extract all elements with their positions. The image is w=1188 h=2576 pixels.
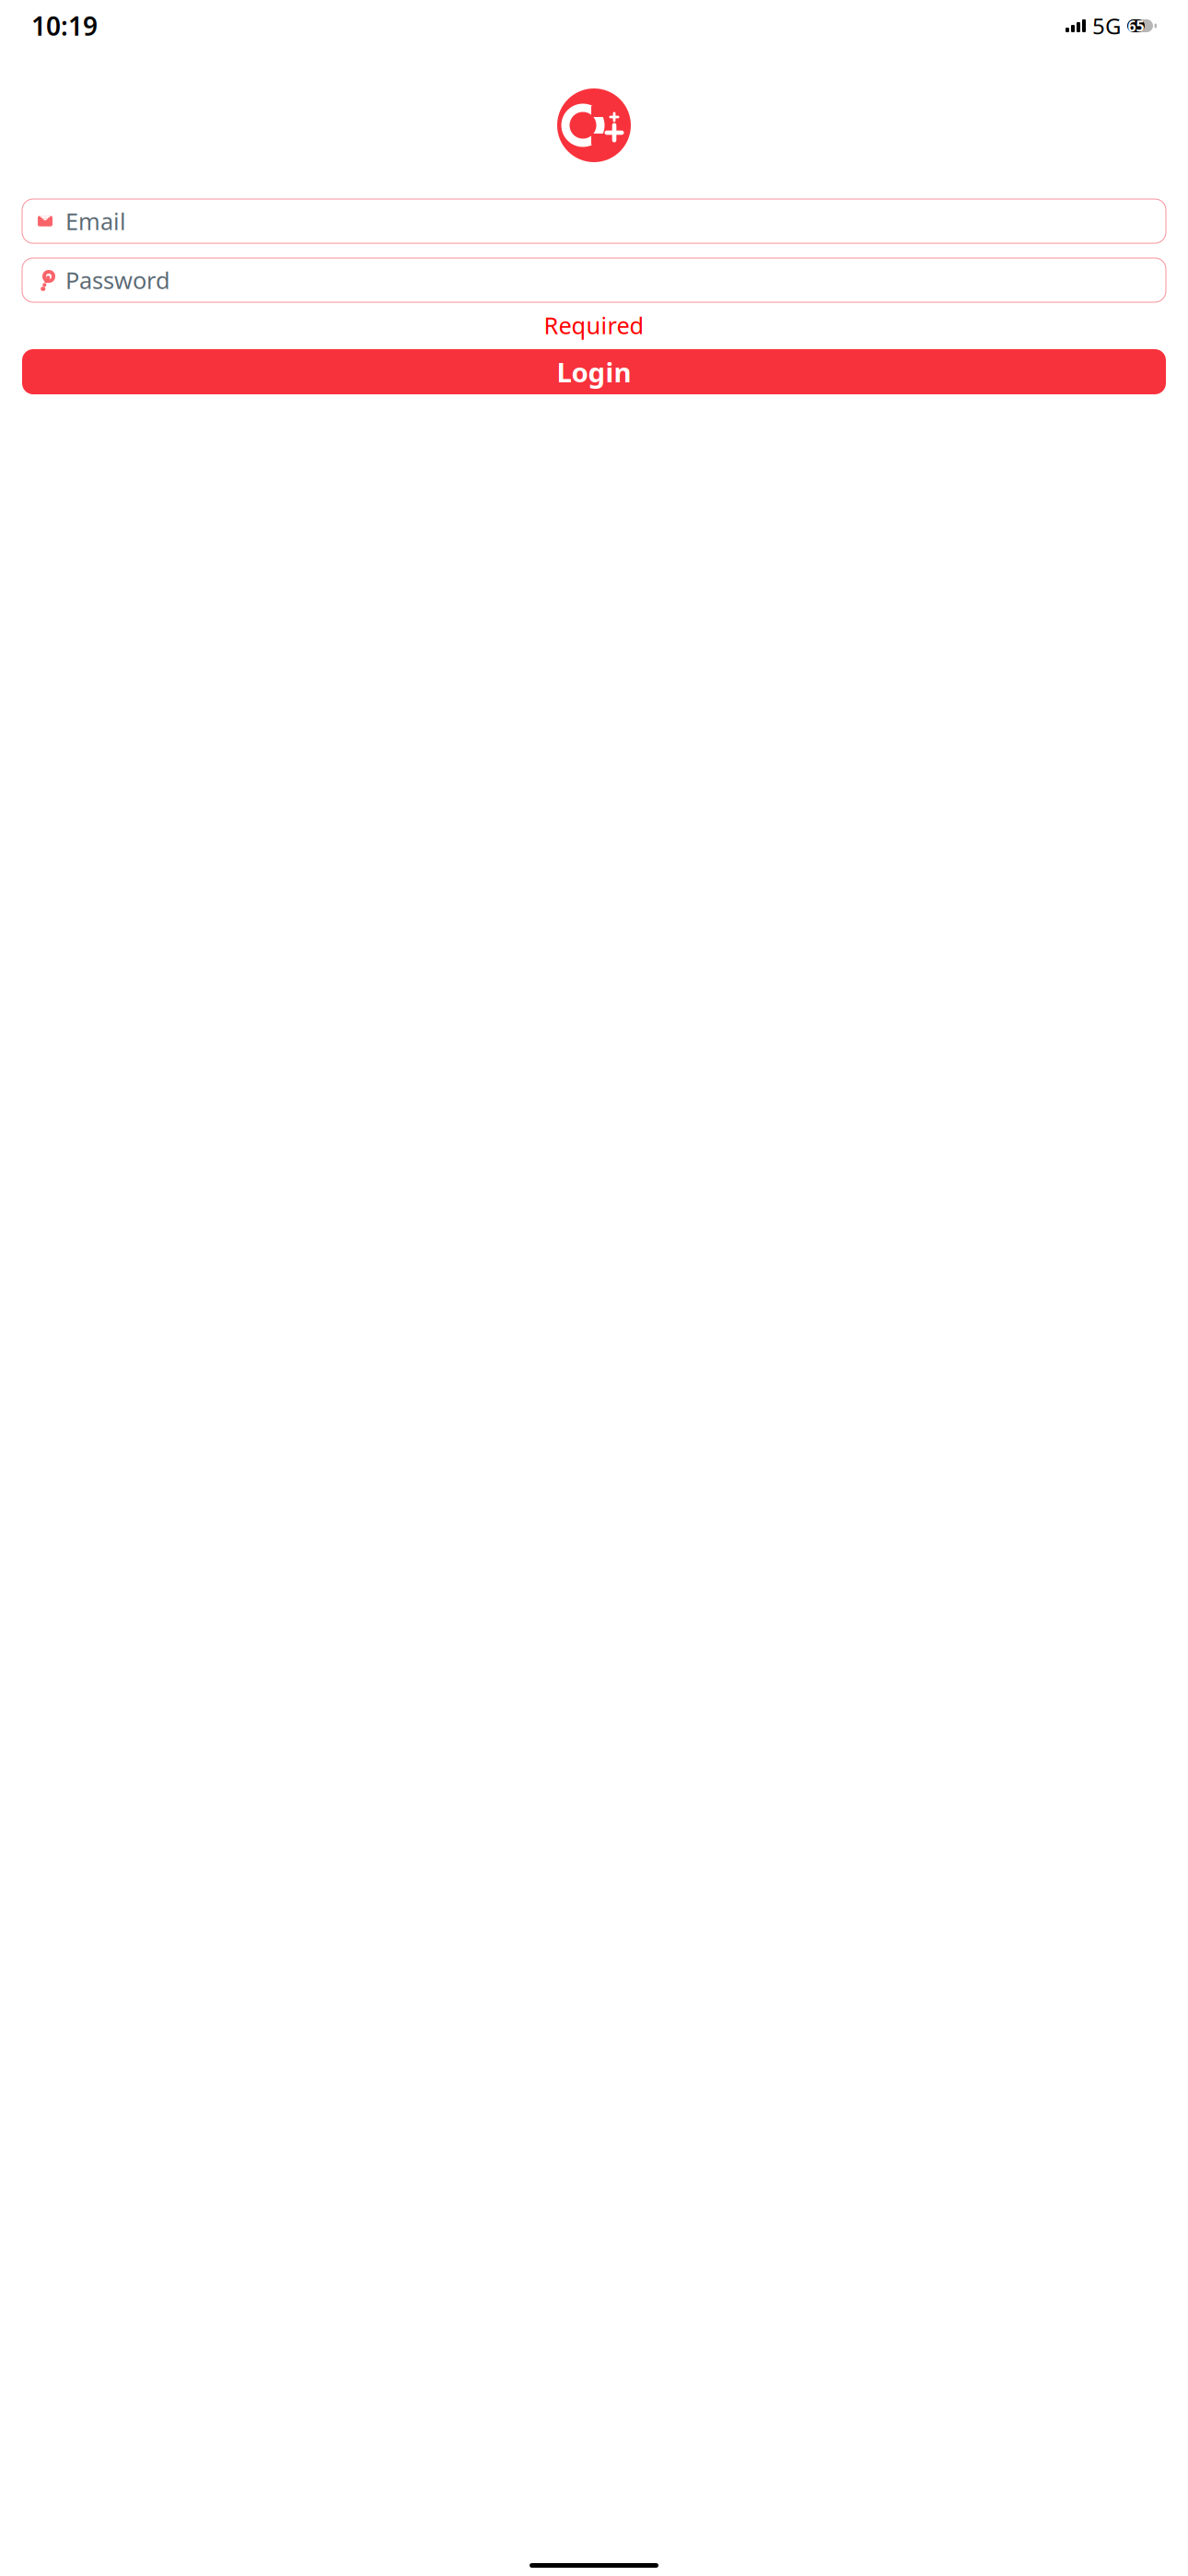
staticText: Password <box>65 265 170 296</box>
button[interactable]: Password <box>22 258 1166 302</box>
staticText: 5G <box>1092 11 1121 41</box>
staticText: 65 <box>1128 16 1144 36</box>
button[interactable]: Login <box>22 349 1166 394</box>
button[interactable]: Email <box>22 199 1166 243</box>
staticText: Required <box>544 310 644 341</box>
staticText: 10:19 <box>31 9 98 43</box>
staticText: Login <box>557 354 631 390</box>
staticText: Email <box>65 206 126 237</box>
